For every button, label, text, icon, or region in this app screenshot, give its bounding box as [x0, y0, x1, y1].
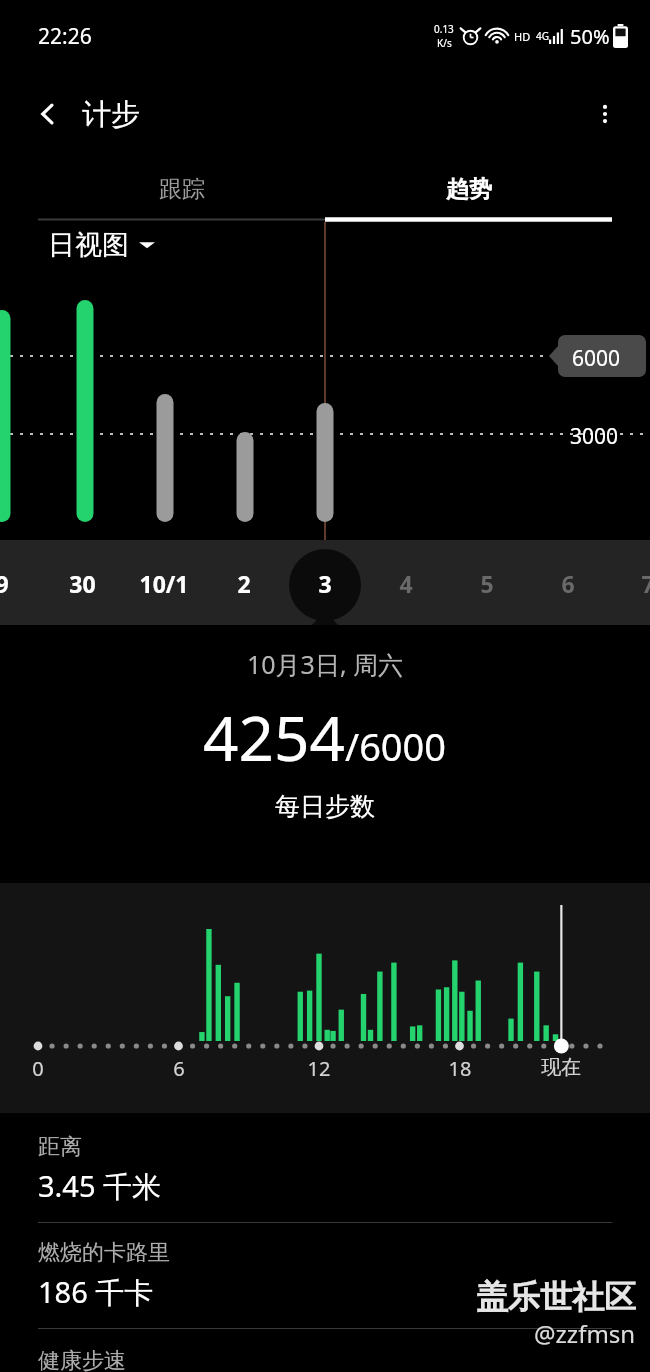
button[interactable]: 跟踪 — [38, 156, 325, 222]
button[interactable]: More options — [582, 91, 628, 137]
staticText: 4G — [536, 29, 549, 43]
button[interactable]: Back — [26, 92, 70, 136]
staticText: 10月3日, 周六 — [247, 647, 404, 681]
staticText: 4 — [399, 568, 413, 599]
staticText: 计步 — [82, 96, 140, 133]
staticText: 30 — [69, 568, 96, 599]
staticText: HD — [514, 29, 531, 44]
staticText: 日视图 — [48, 228, 129, 262]
button[interactable]: 30 — [42, 546, 122, 620]
staticText: 健康步速 — [38, 1347, 126, 1372]
staticText: 6 — [159, 1055, 199, 1082]
staticText: 2 — [237, 568, 251, 599]
staticText: 6 — [561, 568, 575, 599]
staticText: 每日步数 — [275, 791, 375, 822]
button[interactable]: 6 — [528, 546, 608, 620]
button[interactable]: 日视图 — [48, 228, 155, 262]
staticText: 7 — [641, 568, 650, 599]
staticText: 3000 — [570, 422, 619, 451]
staticText: 3.45 千米 — [38, 1166, 162, 1206]
staticText: 跟踪 — [159, 175, 205, 204]
button[interactable]: 7 — [608, 546, 650, 620]
staticText: K/s — [437, 36, 452, 50]
staticText: 0 — [18, 1055, 58, 1082]
staticText: 18 — [440, 1055, 480, 1082]
staticText: /6000 — [345, 720, 447, 772]
staticText: 趋势 — [446, 175, 492, 204]
staticText: 22:26 — [38, 22, 92, 51]
button[interactable]: 燃烧的卡路里 — [0, 1223, 650, 1328]
staticText: 9 — [0, 568, 9, 599]
button[interactable]: 健康步速 — [0, 1329, 650, 1372]
staticText: 3 — [318, 568, 332, 599]
staticText: 12 — [299, 1055, 339, 1082]
staticText: 5 — [480, 568, 494, 599]
staticText: 186 千卡 — [38, 1272, 154, 1312]
button[interactable]: 10/1 — [124, 546, 204, 620]
button[interactable]: 3 — [285, 546, 365, 620]
staticText: 10/1 — [139, 568, 189, 599]
button[interactable]: 4 — [366, 546, 446, 620]
button[interactable]: 距离 — [0, 1113, 650, 1222]
staticText: 燃烧的卡路里 — [38, 1239, 170, 1267]
staticText: 6000 — [572, 344, 621, 373]
staticText: 0.13 — [434, 22, 454, 36]
staticText: 50% — [570, 23, 610, 50]
staticText: 4254 — [203, 695, 345, 779]
button[interactable]: 2 — [204, 546, 284, 620]
button[interactable]: 5 — [447, 546, 527, 620]
staticText: 现在 — [531, 1055, 591, 1080]
staticText: 距离 — [38, 1133, 82, 1161]
button[interactable]: 趋势 — [325, 156, 612, 222]
button[interactable]: 9 — [0, 546, 42, 620]
staticText: @zzfmsn — [534, 1317, 636, 1350]
staticText: 盖乐世社区 — [476, 1277, 636, 1317]
